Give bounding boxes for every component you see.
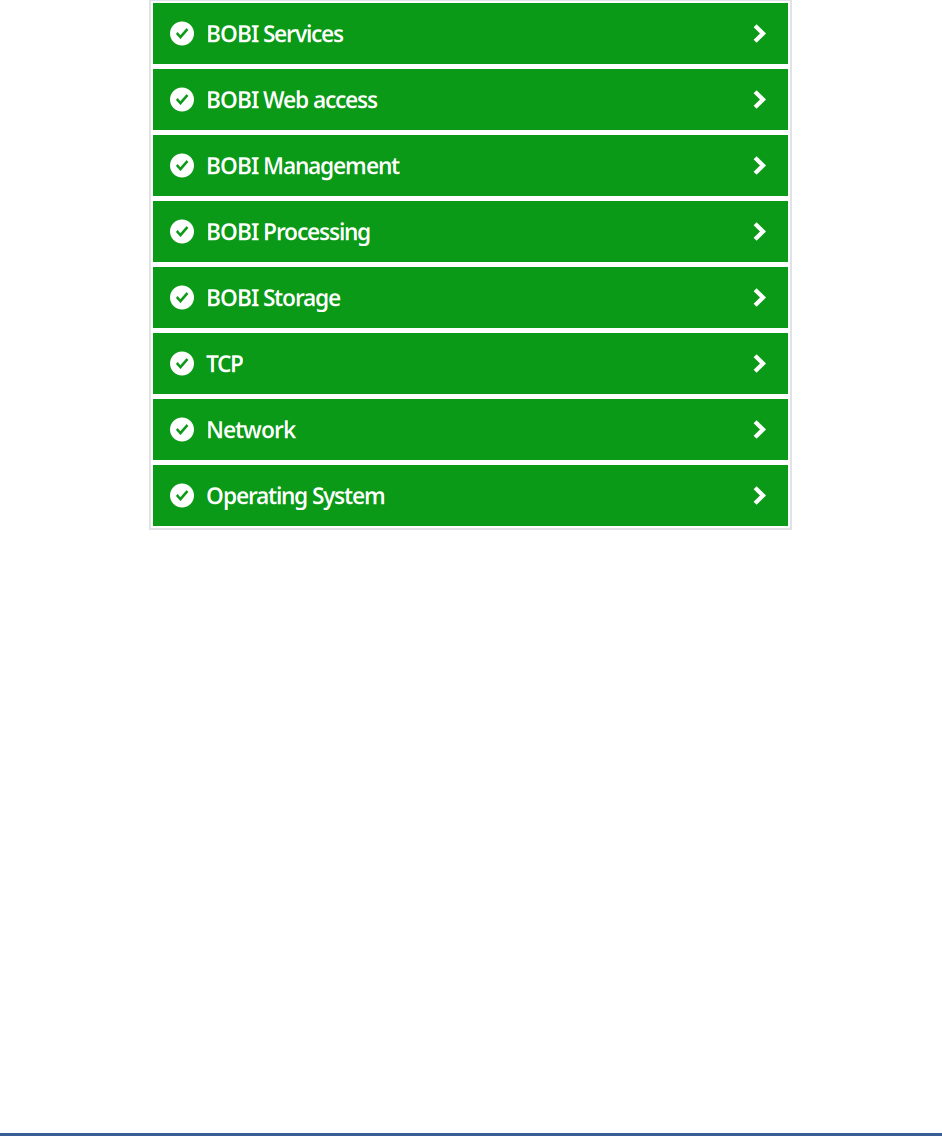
staticText: Operating System [206, 480, 386, 510]
staticText: Network [206, 414, 296, 444]
button[interactable]: BOBI Management [153, 135, 788, 196]
staticText: BOBI Management [206, 150, 400, 180]
staticText: BOBI Web access [206, 84, 378, 114]
button[interactable]: BOBI Storage [153, 267, 788, 328]
staticText: TCP [206, 348, 244, 378]
staticText: BOBI Storage [206, 282, 341, 312]
button[interactable]: TCP [153, 333, 788, 394]
staticText: BOBI Processing [206, 216, 371, 246]
staticText: BOBI Services [206, 18, 344, 48]
button[interactable]: BOBI Processing [153, 201, 788, 262]
button[interactable]: Network [153, 399, 788, 460]
button[interactable]: Operating System [153, 465, 788, 526]
button[interactable]: BOBI Web access [153, 69, 788, 130]
button[interactable]: BOBI Services [153, 3, 788, 64]
